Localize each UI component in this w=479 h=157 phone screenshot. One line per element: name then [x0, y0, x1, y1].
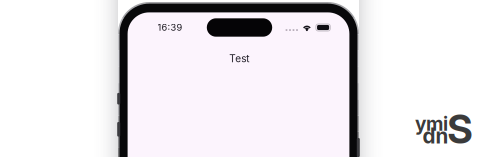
- staticText: ymi: [415, 112, 448, 135]
- staticText: dn: [422, 123, 448, 148]
- staticText: 16:39: [158, 22, 183, 33]
- button[interactable]: Test: [229, 52, 249, 65]
- staticText: Test: [229, 52, 249, 65]
- staticText: S: [447, 105, 473, 153]
